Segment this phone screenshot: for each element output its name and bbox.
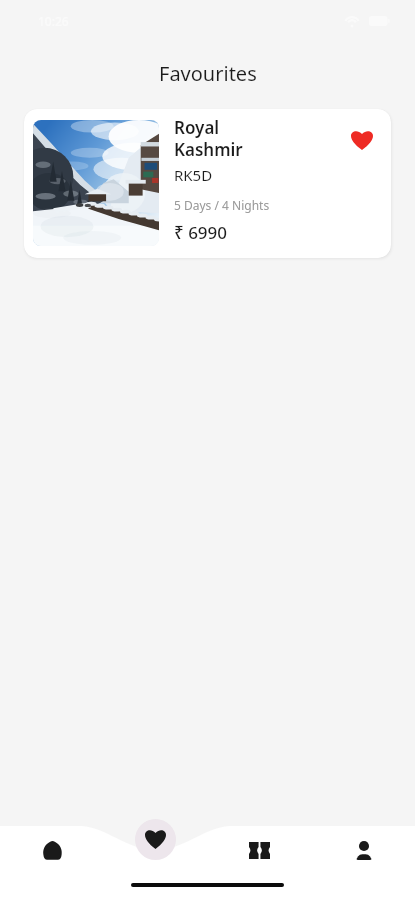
- button[interactable]: Tickets: [237, 828, 281, 872]
- staticText: RK5D: [174, 165, 213, 185]
- staticText: Royal Kashmir: [174, 116, 243, 161]
- staticText: 5 Days / 4 Nights: [174, 197, 270, 213]
- button[interactable]: Favourites: [135, 819, 176, 860]
- staticText: ₹ 6990: [174, 221, 228, 244]
- button[interactable]: Profile: [342, 828, 386, 872]
- button[interactable]: Favourite: [347, 124, 377, 154]
- button[interactable]: Home: [30, 828, 74, 872]
- staticText: Favourites: [159, 60, 257, 87]
- button[interactable]: Royal Kashmir: [24, 109, 391, 258]
